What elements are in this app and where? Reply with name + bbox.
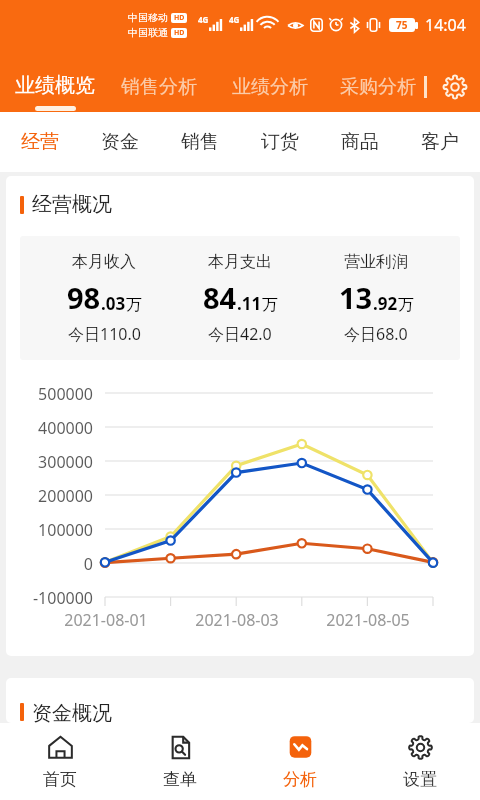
- staticText: 分析: [283, 769, 317, 790]
- staticText: 中国移动: [128, 11, 168, 24]
- staticText: 今日68.0: [344, 323, 408, 345]
- staticText: 13: [339, 278, 373, 317]
- staticText: 经营: [21, 130, 59, 154]
- staticText: 14:04: [425, 14, 466, 36]
- staticText: 资金概况: [32, 701, 112, 723]
- button[interactable]: 采购分析: [340, 75, 416, 99]
- button[interactable]: 销售分析: [121, 75, 197, 99]
- button[interactable]: 业绩分析: [232, 75, 308, 99]
- staticText: 万: [126, 295, 142, 315]
- staticText: 4G: [229, 14, 240, 25]
- staticText: 今日42.0: [208, 323, 272, 345]
- staticText: 资金: [101, 130, 139, 154]
- staticText: 200000: [6, 485, 93, 507]
- button[interactable]: 资金: [80, 112, 160, 172]
- button[interactable]: 业绩概览: [15, 73, 95, 111]
- staticText: 业绩概览: [15, 73, 95, 98]
- staticText: 今日110.0: [68, 323, 141, 345]
- staticText: 98: [67, 278, 101, 317]
- staticText: .11: [237, 292, 262, 315]
- staticText: 首页: [43, 769, 77, 790]
- staticText: 中国联通: [128, 26, 168, 39]
- staticText: HD: [174, 13, 185, 23]
- button[interactable]: 销售: [160, 112, 240, 172]
- staticText: 75: [396, 18, 408, 32]
- staticText: 本月支出: [208, 252, 272, 272]
- staticText: 万: [262, 295, 278, 315]
- staticText: 500000: [6, 383, 93, 405]
- staticText: 经营概况: [32, 192, 112, 217]
- staticText: .92: [373, 292, 398, 315]
- staticText: 2021-08-05: [326, 609, 410, 631]
- staticText: 本月收入: [72, 252, 136, 272]
- staticText: 0: [6, 553, 93, 575]
- button[interactable]: 订货: [240, 112, 320, 172]
- staticText: 100000: [6, 519, 93, 541]
- staticText: 销售: [181, 130, 219, 154]
- button[interactable]: 分析: [240, 723, 360, 800]
- button[interactable]: 客户: [400, 112, 480, 172]
- staticText: -100000: [6, 587, 93, 609]
- staticText: 营业利润: [344, 252, 408, 272]
- button[interactable]: 商品: [320, 112, 400, 172]
- staticText: 万: [398, 295, 414, 315]
- button[interactable]: 查单: [120, 723, 240, 800]
- staticText: 400000: [6, 417, 93, 439]
- staticText: 订货: [261, 130, 299, 154]
- button[interactable]: Settings: [438, 70, 472, 104]
- staticText: 2021-08-01: [64, 609, 148, 631]
- staticText: 2021-08-03: [195, 609, 279, 631]
- button[interactable]: 首页: [0, 723, 120, 800]
- staticText: 84: [203, 278, 237, 317]
- staticText: 商品: [341, 130, 379, 154]
- staticText: .03: [101, 292, 126, 315]
- staticText: 300000: [6, 451, 93, 473]
- staticText: 查单: [163, 769, 197, 790]
- staticText: 客户: [421, 130, 459, 154]
- button[interactable]: 经营: [0, 112, 80, 172]
- staticText: HD: [174, 28, 185, 38]
- staticText: 设置: [403, 769, 437, 790]
- button[interactable]: 设置: [360, 723, 480, 800]
- staticText: 4G: [198, 14, 209, 25]
